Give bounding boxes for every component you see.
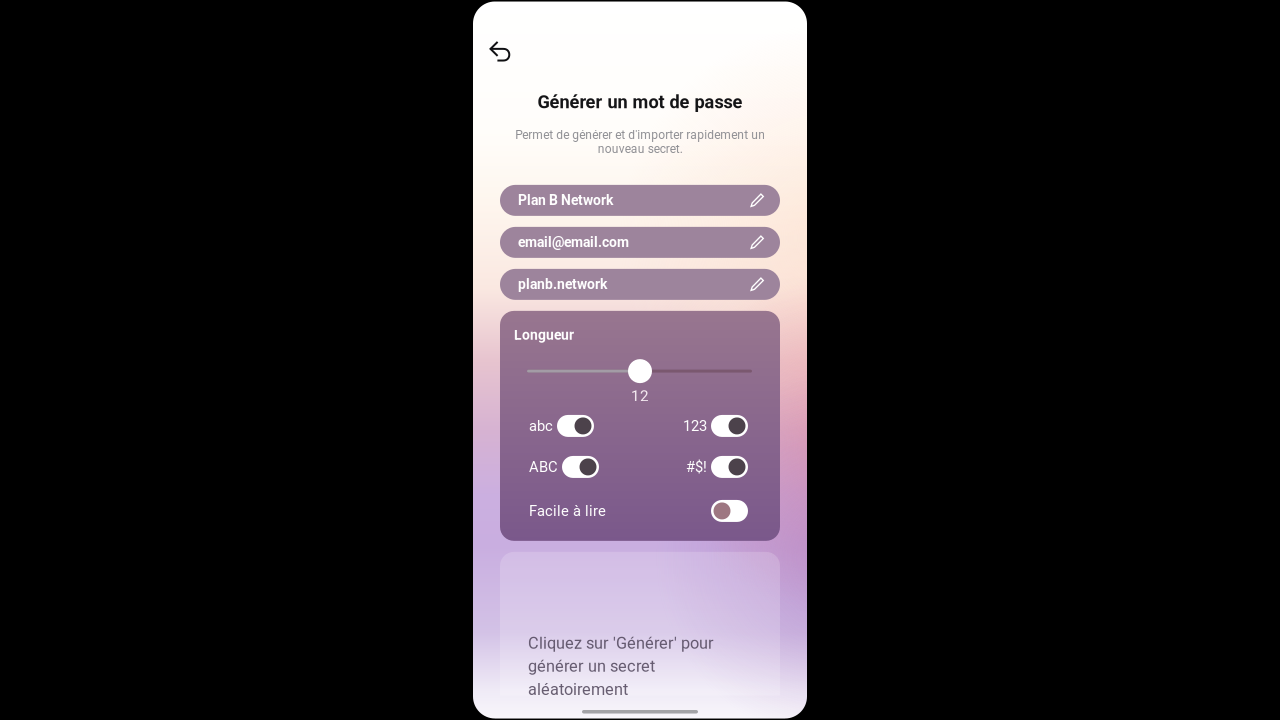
staticText: Générer un mot de passe bbox=[537, 91, 742, 113]
staticText: Longueur bbox=[514, 327, 574, 343]
staticText: #$! bbox=[686, 458, 707, 475]
button[interactable]: Facile à lire bbox=[529, 500, 748, 522]
button[interactable]: ABC bbox=[529, 456, 599, 478]
staticText: Facile à lire bbox=[529, 502, 606, 519]
staticText: ABC bbox=[529, 458, 558, 475]
staticText: planb.network bbox=[518, 276, 607, 292]
staticText: 12 bbox=[631, 387, 649, 405]
staticText: email@email.com bbox=[518, 234, 629, 250]
button[interactable]: email@email.com bbox=[500, 227, 780, 258]
button[interactable]: 123 bbox=[683, 415, 748, 437]
button[interactable]: abc bbox=[529, 415, 594, 437]
staticText: Plan B Network bbox=[518, 192, 613, 208]
staticText: abc bbox=[529, 417, 553, 434]
button[interactable]: #$! bbox=[686, 456, 748, 478]
button[interactable]: planb.network bbox=[500, 269, 780, 300]
staticText: Permet de générer et d'importer rapideme… bbox=[515, 128, 765, 156]
button[interactable]: Plan B Network bbox=[500, 185, 780, 216]
staticText: Cliquez sur 'Générer' pour générer un se… bbox=[528, 634, 714, 699]
staticText: 123 bbox=[683, 417, 707, 434]
button[interactable]: Back bbox=[489, 39, 513, 63]
